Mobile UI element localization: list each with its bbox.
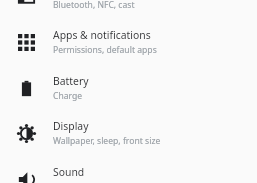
staticText: Sound xyxy=(53,165,85,179)
button[interactable]: Apps & notifications xyxy=(0,19,257,65)
other: Sound xyxy=(0,156,53,183)
other: Display xyxy=(0,110,53,156)
staticText: Wallpaper, sleep, front size xyxy=(53,135,161,147)
button[interactable]: Display xyxy=(0,110,257,156)
staticText: Charge xyxy=(53,90,83,102)
staticText: Bluetooth, NFC, cast xyxy=(53,0,135,11)
staticText: Apps & notifications xyxy=(53,28,151,42)
button[interactable]: Sound xyxy=(0,156,257,183)
button[interactable]: Connected devices xyxy=(0,0,257,20)
other: Battery xyxy=(0,65,53,111)
staticText: Permissions, default apps xyxy=(53,44,157,56)
other: Apps & notifications xyxy=(0,19,53,65)
staticText: Display xyxy=(53,119,89,133)
staticText: Battery xyxy=(53,74,89,88)
other: Connected devices xyxy=(0,0,53,20)
button[interactable]: Battery xyxy=(0,65,257,111)
